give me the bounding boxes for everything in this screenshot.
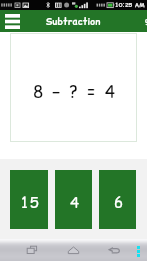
staticText: Subtraction	[46, 16, 101, 29]
button[interactable]: 15	[10, 170, 48, 229]
button[interactable]: Back	[107, 244, 120, 256]
staticText: 8 − ? = 4	[33, 80, 117, 104]
staticText: 4	[70, 192, 82, 213]
button[interactable]: Home	[67, 245, 80, 255]
button[interactable]: 6	[99, 170, 136, 229]
button[interactable]: 8 − ? = 4	[11, 34, 136, 141]
staticText: 6	[114, 192, 126, 213]
button[interactable]: More options	[137, 246, 140, 257]
staticText: 10:25 AM	[115, 1, 145, 9]
button[interactable]: 4	[55, 170, 92, 229]
button[interactable]: Recent apps	[26, 245, 38, 255]
staticText: 9	[145, 17, 147, 28]
staticText: 15	[21, 192, 41, 213]
button[interactable]: Open navigation menu	[5, 14, 20, 29]
